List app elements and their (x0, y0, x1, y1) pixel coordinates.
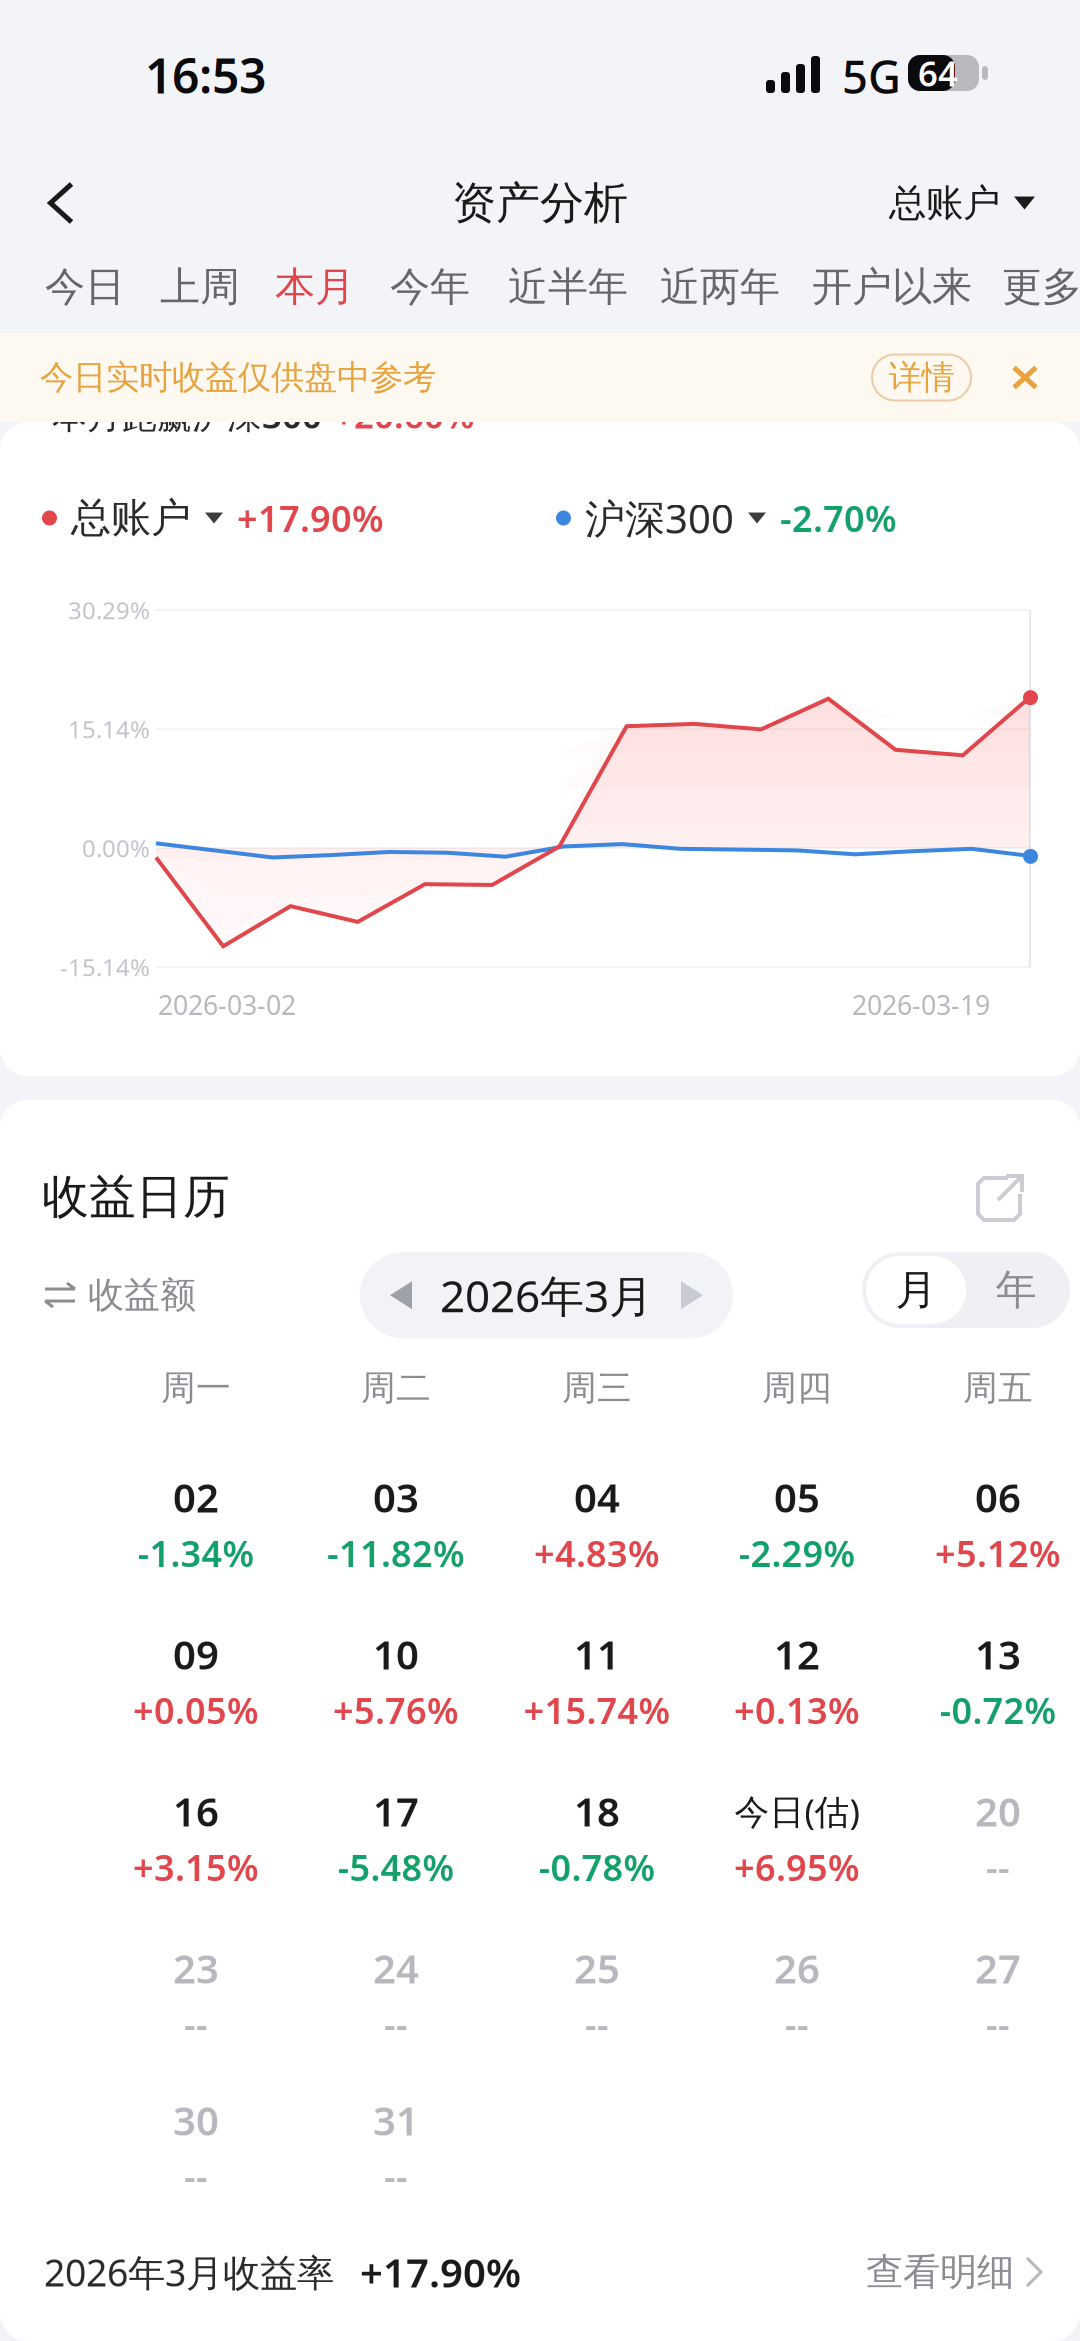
staticText: 资产分析 (452, 176, 628, 230)
staticText: 更多 (1002, 262, 1080, 311)
staticText: +0.05% (133, 1686, 259, 1734)
staticText: 今日 (45, 262, 125, 311)
staticText: 上周 (160, 262, 240, 311)
staticText: 30.29% (68, 594, 150, 626)
staticText: 24 (373, 1941, 419, 1994)
staticText: 周五 (963, 1367, 1033, 1409)
staticText: 今年 (390, 262, 470, 311)
button[interactable]: 详情 (872, 354, 971, 400)
button[interactable]: 近两年 (660, 251, 780, 323)
staticText: 总账户 (71, 493, 191, 542)
staticText: 15.14% (68, 713, 150, 745)
staticText: 26 (774, 1941, 820, 1994)
staticText: +17.90% (237, 494, 384, 542)
button[interactable]: 查看明细 (866, 2235, 1080, 2309)
staticText: +5.76% (333, 1686, 459, 1734)
staticText: 20 (975, 1784, 1021, 1837)
staticText: 近半年 (508, 262, 628, 311)
staticText: 09 (173, 1627, 219, 1680)
button[interactable]: 总账户 (889, 155, 1080, 251)
staticText: 周四 (762, 1367, 832, 1409)
button[interactable]: 返回 (0, 155, 122, 251)
staticText: 年 (995, 1265, 1036, 1315)
staticText: +6.95% (734, 1843, 860, 1891)
staticText: -11.82% (327, 1529, 465, 1577)
staticText: +17.90% (360, 2245, 521, 2298)
staticText: -0.72% (939, 1686, 1056, 1734)
button[interactable]: 更多 (1002, 251, 1080, 323)
staticText: +3.15% (133, 1843, 259, 1891)
staticText: 16:53 (145, 43, 266, 107)
staticText: 10 (373, 1627, 419, 1680)
button[interactable]: 年 (966, 1256, 1066, 1324)
staticText: 03 (373, 1470, 419, 1523)
button[interactable]: 上个月 (390, 1281, 414, 1309)
staticText: 2026年3月 (440, 1266, 653, 1324)
button[interactable]: 下个月 (679, 1281, 703, 1309)
staticText: 详情 (888, 357, 954, 398)
button[interactable]: 月 (866, 1256, 966, 1324)
staticText: 18 (574, 1784, 620, 1837)
staticText: -- (184, 2152, 208, 2200)
staticText: 2026-03-02 (158, 987, 296, 1022)
button[interactable]: 近半年 (508, 251, 628, 323)
button[interactable]: 沪深300 (556, 488, 897, 548)
staticText: 17 (373, 1784, 419, 1837)
staticText: +15.74% (523, 1686, 670, 1734)
button[interactable]: 今日 (45, 251, 125, 323)
staticText: 2026年3月收益率 (44, 2247, 334, 2297)
staticText: 周一 (161, 1367, 231, 1409)
staticText: -0.78% (538, 1843, 655, 1891)
button[interactable]: 收益额 (44, 1260, 196, 1330)
staticText: -- (184, 2000, 208, 2048)
staticText: 30 (173, 2093, 219, 2146)
staticText: 25 (574, 1941, 620, 1994)
staticText: 近两年 (660, 262, 780, 311)
staticText: 27 (975, 1941, 1021, 1994)
staticText: 本月 (275, 262, 355, 311)
staticText: 23 (173, 1941, 219, 1994)
staticText: -2.29% (738, 1529, 855, 1577)
staticText: 64 (918, 50, 958, 96)
staticText: 月 (895, 1265, 936, 1315)
button[interactable]: 总账户 (42, 488, 384, 548)
staticText: 收益额 (88, 1273, 196, 1317)
staticText: 0.00% (82, 832, 150, 864)
staticText: 12 (774, 1627, 820, 1680)
staticText: 2026-03-19 (852, 987, 990, 1022)
staticText: -- (384, 2152, 408, 2200)
staticText: -- (384, 2000, 408, 2048)
staticText: 本月跑赢沪深300 (52, 392, 322, 438)
staticText: -1.34% (137, 1529, 254, 1577)
staticText: -- (986, 1843, 1010, 1891)
staticText: -15.14% (60, 951, 150, 983)
staticText: +5.12% (935, 1529, 1061, 1577)
staticText: +20.60% (334, 392, 474, 438)
staticText: 周二 (361, 1367, 431, 1409)
staticText: -- (585, 2000, 609, 2048)
staticText: +0.13% (734, 1686, 860, 1734)
staticText: 02 (173, 1470, 219, 1523)
staticText: 今日实时收益仅供盘中参考 (40, 357, 436, 398)
button[interactable]: 本月 (275, 251, 355, 323)
staticText: 收益日历 (42, 1168, 230, 1226)
staticText: 04 (574, 1470, 620, 1523)
button[interactable]: 关闭 (989, 341, 1061, 413)
button[interactable]: 上周 (160, 251, 240, 323)
button[interactable]: 展开 (960, 1158, 1038, 1236)
staticText: -2.70% (780, 494, 897, 542)
staticText: 查看明细 (866, 2249, 1014, 2295)
staticText: 06 (975, 1470, 1021, 1523)
staticText: 31 (373, 2093, 419, 2146)
staticText: 05 (774, 1470, 820, 1523)
staticText: -5.48% (337, 1843, 454, 1891)
staticText: 13 (975, 1627, 1021, 1680)
staticText: 今日(估) (734, 1788, 859, 1834)
staticText: 开户以来 (812, 262, 972, 311)
staticText: +4.83% (534, 1529, 660, 1577)
staticText: -- (986, 2000, 1010, 2048)
staticText: 周三 (562, 1367, 632, 1409)
staticText: 沪深300 (585, 491, 734, 544)
button[interactable]: 今年 (390, 251, 470, 323)
button[interactable]: 开户以来 (812, 251, 972, 323)
